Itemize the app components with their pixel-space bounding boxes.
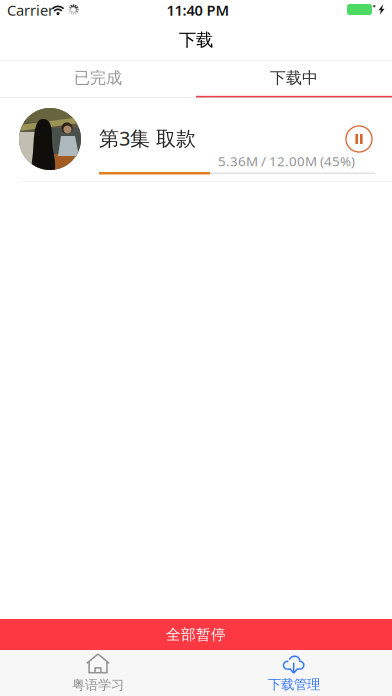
staticText: 下载管理: [268, 676, 320, 693]
staticText: 全部暂停: [166, 625, 226, 643]
staticText: 粤语学习: [72, 677, 124, 693]
staticText: Carrier: [7, 0, 54, 20]
staticText: 11:40 PM: [166, 0, 229, 20]
staticText: 下载中: [270, 68, 318, 88]
button[interactable]: 已完成: [0, 60, 196, 97]
staticText: 已完成: [74, 68, 122, 88]
staticText: 5.36M / 12.00M (45%): [218, 152, 355, 170]
button[interactable]: 下载管理: [196, 650, 392, 696]
button[interactable]: 下载中: [196, 60, 392, 97]
staticText: 第3集 取款: [99, 125, 196, 151]
button[interactable]: Pause download: [337, 117, 381, 161]
button[interactable]: [0, 98, 392, 182]
staticText: 下载: [179, 29, 213, 51]
button[interactable]: 全部暂停: [0, 619, 392, 650]
button[interactable]: 粤语学习: [0, 650, 196, 696]
